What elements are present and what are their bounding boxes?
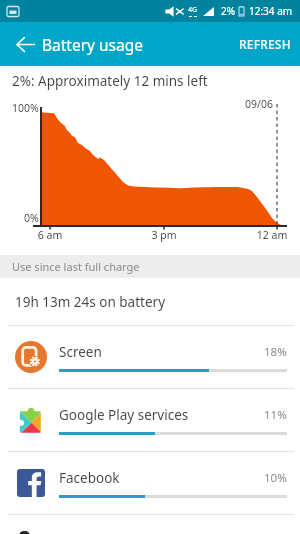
staticText: 11% <box>264 407 287 423</box>
staticText: 4G <box>188 5 198 15</box>
staticText: 10% <box>264 470 287 486</box>
staticText: 18% <box>264 344 287 360</box>
button[interactable]: Screen <box>0 326 300 388</box>
staticText: 6 am <box>34 228 66 242</box>
staticText: 2% <box>221 4 236 18</box>
staticText: 3 pm <box>148 228 180 242</box>
staticText: 12:34 am <box>249 4 293 18</box>
button[interactable]: REFRESH <box>227 23 300 65</box>
staticText: 100% <box>12 101 39 115</box>
staticText: 2%: Approximately 12 mins left <box>12 72 208 90</box>
staticText: REFRESH <box>239 36 291 52</box>
button[interactable]: Facebook <box>0 452 300 514</box>
staticText: Use since last full charge <box>12 259 140 274</box>
staticText: 0% <box>24 211 39 225</box>
button[interactable]: Back <box>3 22 47 66</box>
staticText: Facebook <box>59 469 264 487</box>
button[interactable]: Google Play services <box>0 389 300 451</box>
staticText: 09/06 <box>245 97 273 111</box>
staticText: Screen <box>59 343 264 361</box>
staticText: 12 am <box>253 228 291 242</box>
staticText: Battery usage <box>42 34 144 55</box>
staticText: 19h 13m 24s on battery <box>15 293 166 311</box>
staticText: Google Play services <box>59 406 264 424</box>
button[interactable] <box>0 515 300 534</box>
